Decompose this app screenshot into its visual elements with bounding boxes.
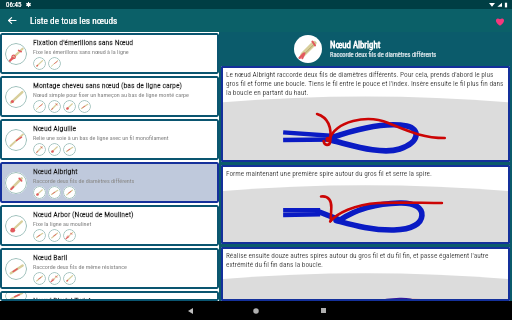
staticText: Montage cheveu sans nœud (bas de ligne c… xyxy=(33,81,183,90)
staticText: Le nœud Albright raccorde deux fils de d… xyxy=(226,70,505,97)
staticText: Raccorde deux fils de même résistance xyxy=(33,263,127,270)
button[interactable]: Nœud Aiguille xyxy=(0,119,219,160)
staticText: Nœud Albright xyxy=(33,167,78,176)
button[interactable]: Favorites xyxy=(490,11,510,31)
button[interactable]: Nœud Baril xyxy=(0,248,219,289)
staticText: Nœud Baril xyxy=(33,253,68,262)
staticText: Raccorde deux fils de diamètres différen… xyxy=(330,51,437,59)
staticText: Nœud Bimini Twist xyxy=(33,296,91,301)
staticText: Nœud Aiguille xyxy=(33,124,77,133)
staticText: Forme maintenant une première spire auto… xyxy=(226,169,432,178)
staticText: Raccorde deux fils de diamètres différen… xyxy=(33,177,135,184)
button[interactable]: Montage cheveu sans nœud (bas de ligne c… xyxy=(0,76,219,117)
staticText: 06:45 xyxy=(6,1,22,9)
staticText: Nœud Arbor (Nœud de Moulinet) xyxy=(33,210,134,219)
button[interactable]: Home xyxy=(246,301,266,320)
staticText: Fixe la ligne au moulinet xyxy=(33,220,92,227)
staticText: Fixation d'émerillons sans Nœud xyxy=(33,38,134,47)
staticText: Fixe les émerillons sans nœud à la ligne xyxy=(33,48,129,55)
button[interactable]: Nœud Albright xyxy=(0,162,219,203)
staticText: Réalise ensuite douze autres spires auto… xyxy=(226,251,505,269)
staticText: Nœud simple pour fixer un hameçon au bas… xyxy=(33,91,189,98)
button[interactable]: Nœud Arbor (Nœud de Moulinet) xyxy=(0,205,219,246)
button[interactable]: Fixation d'émerillons sans Nœud xyxy=(0,33,219,74)
staticText: Relie une soie à un bas de ligne avec un… xyxy=(33,134,169,141)
button[interactable]: Back xyxy=(3,12,20,29)
staticText: Liste de tous les nœuds xyxy=(30,15,118,26)
button[interactable]: Back xyxy=(180,301,200,320)
button[interactable]: Recent apps xyxy=(313,301,333,320)
staticText: Nœud Albright xyxy=(330,40,381,50)
button[interactable]: Nœud Bimini Twist xyxy=(0,291,219,301)
